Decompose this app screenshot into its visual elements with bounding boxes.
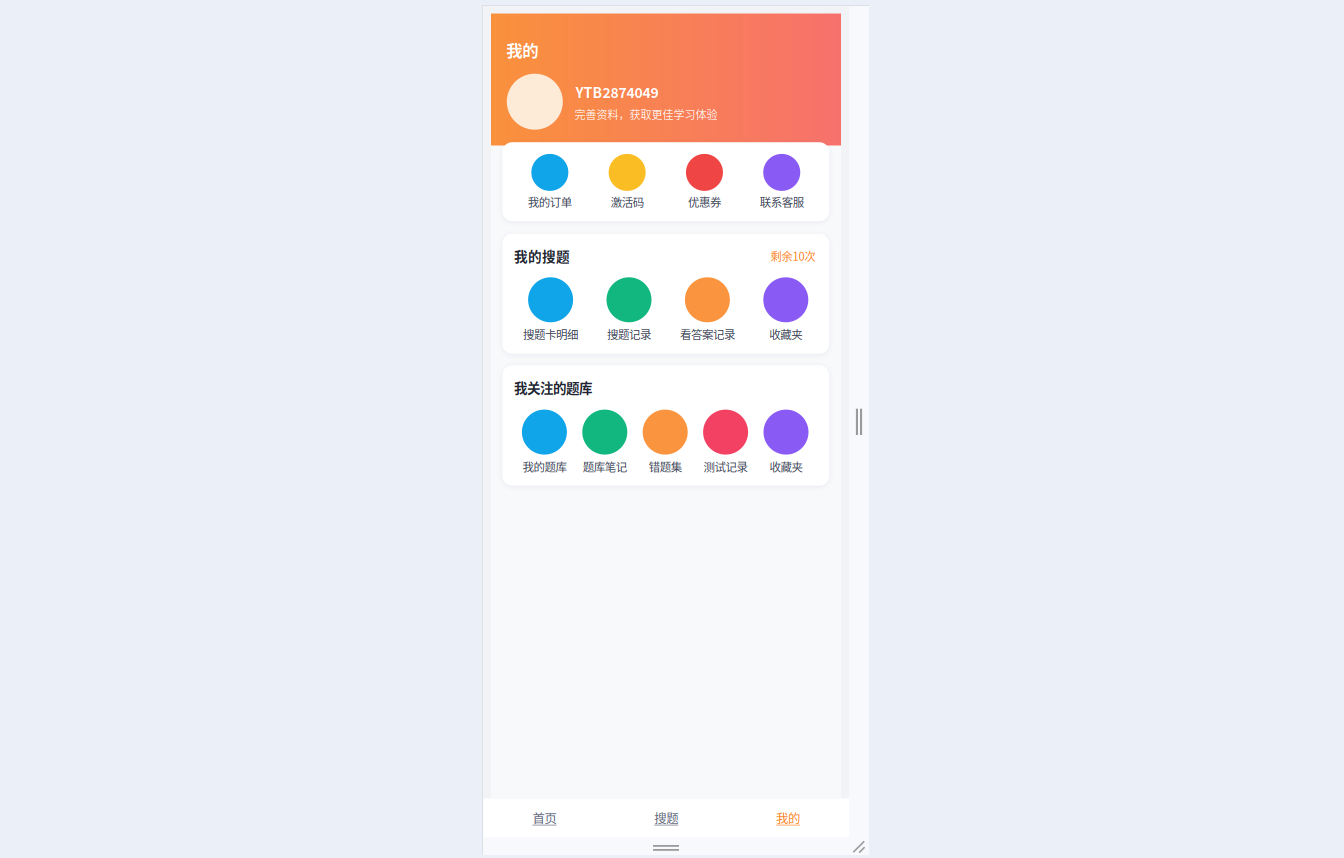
staticText: 我关注的题库 bbox=[514, 378, 592, 397]
button[interactable]: 首页 bbox=[483, 799, 605, 837]
button[interactable]: 联系客服 bbox=[743, 154, 820, 210]
button[interactable]: 搜题卡明细 bbox=[511, 277, 590, 342]
staticText: 我的 bbox=[506, 38, 538, 61]
button[interactable]: 优惠券 bbox=[666, 154, 743, 210]
staticText: 看答案记录 bbox=[680, 326, 735, 342]
staticText: 联系客服 bbox=[760, 193, 804, 210]
staticText: 优惠券 bbox=[688, 193, 721, 210]
staticText: YTB2874049 bbox=[575, 82, 658, 102]
staticText: 题库笔记 bbox=[583, 458, 627, 475]
staticText: 完善资料，获取更佳学习体验 bbox=[574, 106, 717, 122]
staticText: 错题集 bbox=[649, 458, 682, 475]
button[interactable]: 测试记录 bbox=[695, 410, 756, 475]
staticText: 测试记录 bbox=[704, 458, 748, 475]
button[interactable]: 错题集 bbox=[635, 410, 695, 475]
staticText: 搜题 bbox=[654, 809, 678, 827]
staticText: 我的搜题 bbox=[514, 246, 570, 266]
staticText: 我的订单 bbox=[528, 193, 572, 210]
button[interactable]: 搜题 bbox=[605, 799, 727, 837]
staticText: 首页 bbox=[532, 809, 556, 827]
button[interactable]: YTB2874049 bbox=[507, 74, 825, 130]
button[interactable]: 我的题库 bbox=[514, 410, 575, 475]
button[interactable]: 激活码 bbox=[588, 154, 666, 210]
button[interactable]: 看答案记录 bbox=[668, 277, 747, 342]
button[interactable]: 收藏夹 bbox=[747, 277, 825, 342]
staticText: 搜题记录 bbox=[607, 326, 651, 342]
button[interactable]: 搜题记录 bbox=[590, 277, 668, 342]
staticText: 我的 bbox=[776, 809, 800, 827]
staticText: 收藏夹 bbox=[769, 458, 802, 475]
staticText: 收藏夹 bbox=[769, 326, 802, 342]
button[interactable]: 收藏夹 bbox=[756, 410, 816, 475]
button[interactable]: 我的订单 bbox=[511, 154, 588, 210]
staticText: 我的题库 bbox=[522, 458, 566, 475]
staticText: 激活码 bbox=[611, 193, 644, 210]
staticText: 剩余10次 bbox=[771, 248, 816, 264]
staticText: 搜题卡明细 bbox=[523, 326, 578, 342]
button[interactable]: 我的 bbox=[727, 799, 849, 837]
button[interactable]: 题库笔记 bbox=[575, 410, 635, 475]
